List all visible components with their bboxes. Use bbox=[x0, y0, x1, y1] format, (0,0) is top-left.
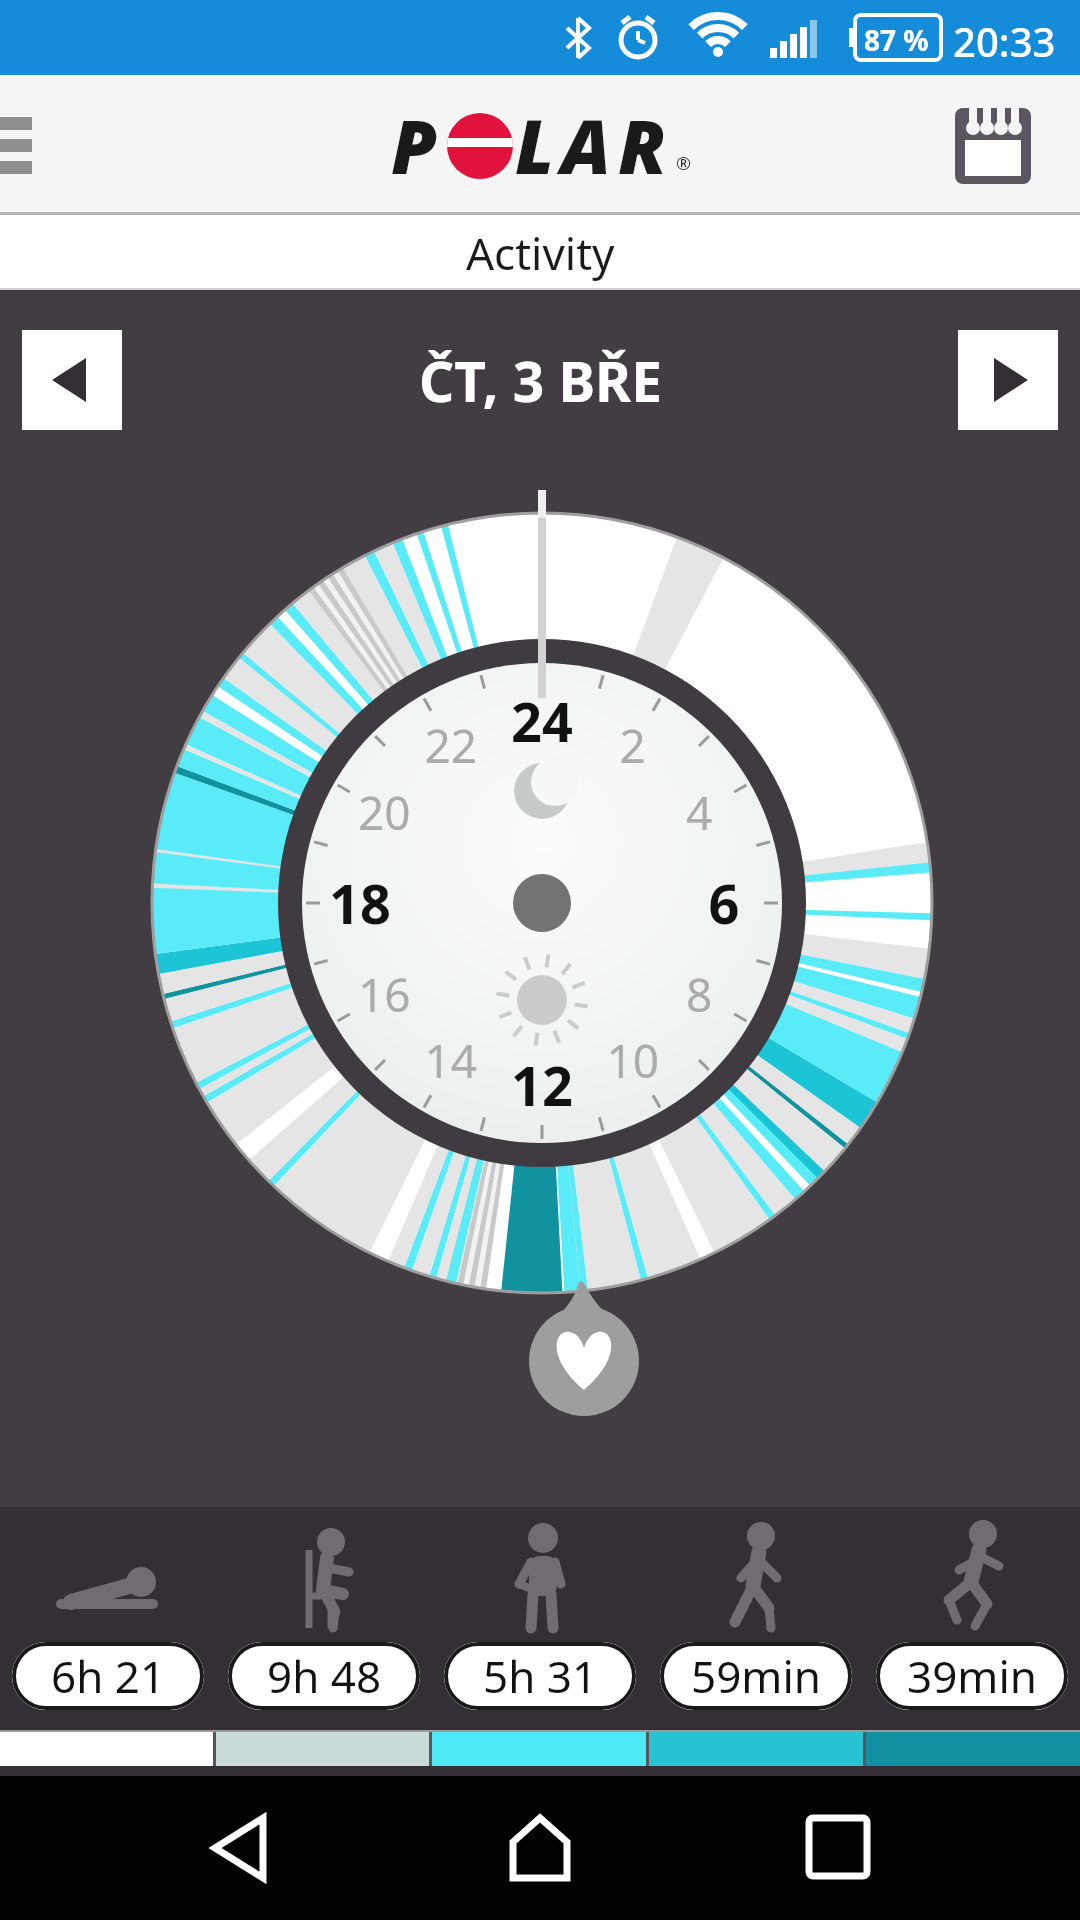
staticText: P bbox=[391, 95, 445, 196]
staticText: 20:33 bbox=[953, 14, 1056, 68]
button[interactable] bbox=[0, 117, 32, 174]
staticText: 39min bbox=[907, 1646, 1038, 1706]
button[interactable]: 6h 21 bbox=[12, 1642, 204, 1710]
button[interactable]: 39min bbox=[876, 1642, 1068, 1710]
staticText: 6h 21 bbox=[51, 1646, 166, 1706]
button[interactable] bbox=[505, 1812, 575, 1882]
staticText: 5h 31 bbox=[483, 1646, 598, 1706]
staticText: ČT, 3 BŘE bbox=[419, 343, 662, 418]
button[interactable]: 59min bbox=[660, 1642, 852, 1710]
button[interactable] bbox=[805, 1814, 871, 1880]
button[interactable] bbox=[205, 1814, 275, 1884]
button[interactable] bbox=[22, 330, 122, 430]
staticText: ® bbox=[676, 151, 691, 176]
staticText: Activity bbox=[466, 223, 615, 283]
staticText: 87 % bbox=[864, 21, 929, 59]
button[interactable]: 9h 48 bbox=[228, 1642, 420, 1710]
staticText: LAR bbox=[515, 95, 674, 196]
staticText: 59min bbox=[691, 1646, 822, 1706]
button[interactable] bbox=[955, 106, 1033, 184]
staticText: 9h 48 bbox=[267, 1646, 382, 1706]
button[interactable]: 5h 31 bbox=[444, 1642, 636, 1710]
button[interactable] bbox=[958, 330, 1058, 430]
